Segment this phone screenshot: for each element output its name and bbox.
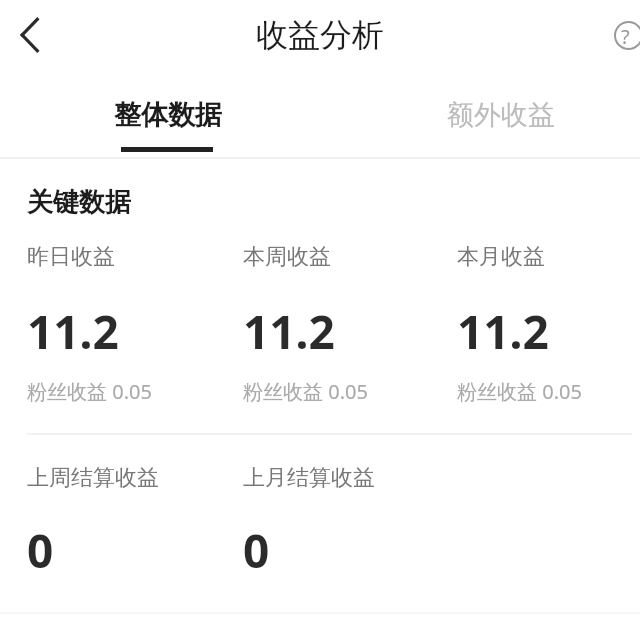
staticText: 11.2	[457, 300, 549, 363]
button[interactable]: Help	[598, 5, 640, 65]
button[interactable]: Back	[0, 0, 60, 70]
button[interactable]: 本周收益	[243, 243, 443, 405]
button[interactable]: 额外收益	[393, 80, 608, 155]
button[interactable]: 整体数据	[60, 80, 275, 155]
button[interactable]: 本月收益	[457, 243, 640, 405]
staticText: 上月结算收益	[243, 464, 375, 492]
button[interactable]: 上周结算收益	[27, 464, 227, 582]
staticText: 额外收益	[447, 98, 555, 132]
staticText: 整体数据	[114, 98, 222, 132]
staticText: 上周结算收益	[27, 464, 159, 492]
button[interactable]: 昨日收益	[27, 243, 227, 405]
staticText: 本月收益	[457, 243, 545, 271]
staticText: 昨日收益	[27, 243, 115, 271]
button[interactable]: 上月结算收益	[243, 464, 443, 582]
staticText: 11.2	[27, 300, 119, 363]
staticText: 关键数据	[27, 186, 131, 219]
staticText: 0	[243, 519, 270, 582]
staticText: 粉丝收益 0.05	[457, 378, 582, 405]
staticText: ?	[621, 23, 630, 50]
staticText: 粉丝收益 0.05	[27, 378, 152, 405]
staticText: 0	[27, 519, 54, 582]
staticText: 粉丝收益 0.05	[243, 378, 368, 405]
staticText: 11.2	[243, 300, 335, 363]
staticText: 收益分析	[256, 15, 384, 55]
staticText: 本周收益	[243, 243, 331, 271]
